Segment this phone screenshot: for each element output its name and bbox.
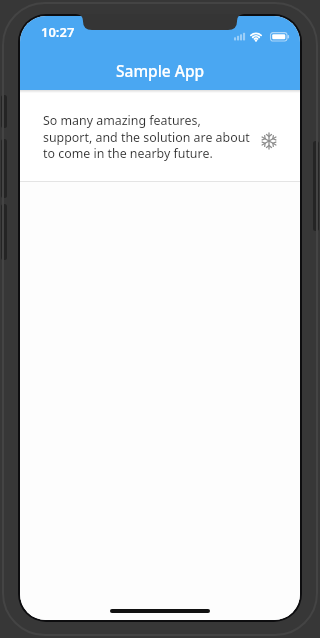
staticText: So many amazing features, support, and t… [43, 112, 260, 161]
button[interactable]: So many amazing features, support, and t… [20, 90, 300, 182]
staticText: 10:27 [41, 23, 75, 41]
staticText: Sample App [116, 60, 205, 81]
